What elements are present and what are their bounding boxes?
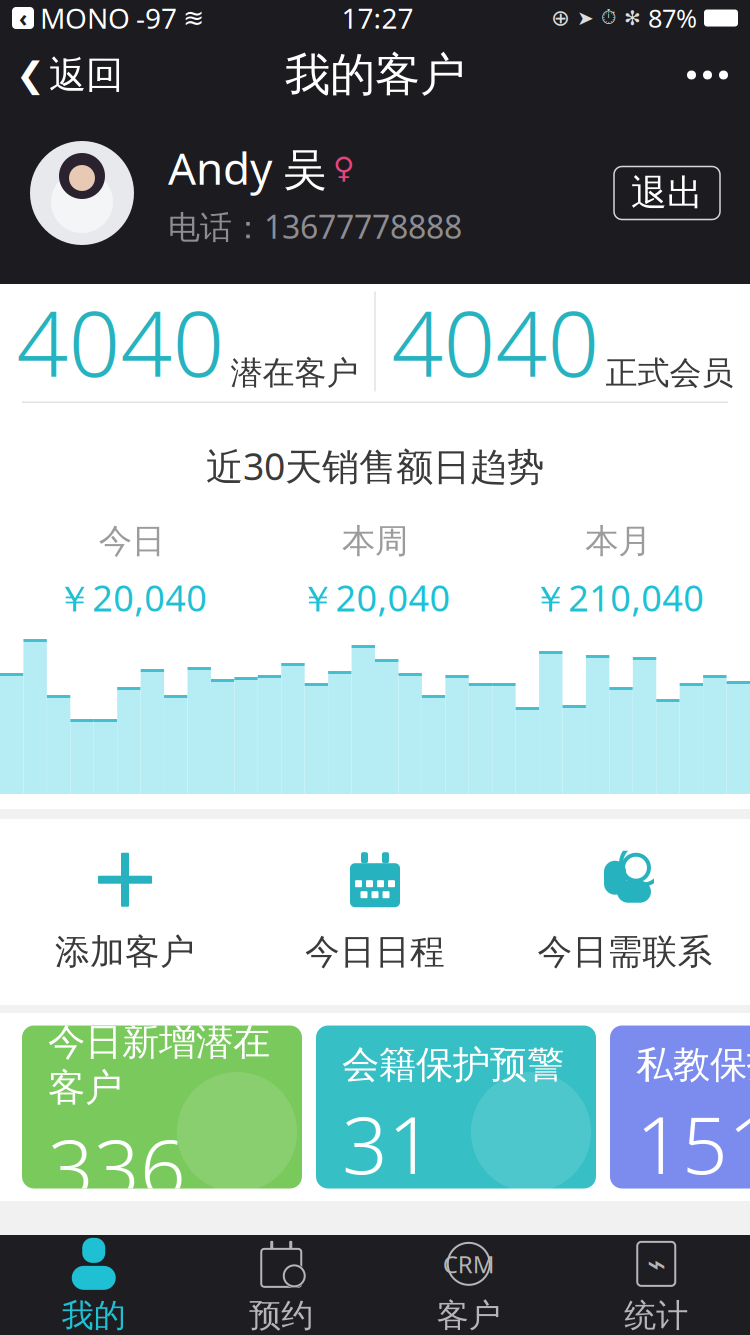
staticText: Andy 吴: [168, 138, 327, 197]
staticText: ➤: [577, 7, 594, 29]
staticText: 客户: [437, 1296, 501, 1335]
button[interactable]: 私教保护预警: [610, 1025, 750, 1188]
staticText: ✻: [624, 7, 641, 29]
staticText: 潜在客户: [230, 353, 358, 393]
staticText: 31: [342, 1090, 434, 1196]
button[interactable]: 会籍保护预警: [316, 1025, 596, 1188]
staticText: ⏱: [601, 8, 617, 28]
staticText: 本周: [342, 521, 408, 561]
staticText: ￥20,040: [56, 573, 207, 621]
staticText: 正式会员: [605, 353, 733, 393]
button[interactable]: ⌁: [562, 1235, 750, 1335]
staticText: 近30天销售额日趋势: [206, 441, 544, 491]
button[interactable]: 今日新增潜在客户: [22, 1025, 302, 1188]
staticText: 151: [636, 1090, 750, 1196]
staticText: 我的: [62, 1296, 126, 1335]
staticText: 电话：13677778888: [168, 205, 462, 248]
staticText: ￥210,040: [532, 573, 704, 621]
button[interactable]: 我的: [0, 1235, 187, 1335]
staticText: 今日新增潜在客户: [48, 1019, 270, 1111]
button[interactable]: 添加客户: [0, 819, 250, 1005]
staticText: 今日需联系: [537, 931, 712, 973]
button[interactable]: 今日需联系: [500, 819, 750, 1005]
staticText: 退出: [631, 171, 703, 215]
staticText: -97: [136, 0, 177, 37]
staticText: 添加客户: [55, 931, 195, 973]
button[interactable]: 更多: [665, 39, 750, 111]
staticText: 4040: [391, 281, 599, 402]
button[interactable]: ❮: [0, 39, 139, 111]
staticText: ⌁: [647, 1246, 666, 1282]
button[interactable]: 今日日程: [250, 819, 500, 1005]
staticText: 336: [48, 1113, 186, 1219]
staticText: 预约: [249, 1296, 313, 1335]
staticText: 87%: [648, 1, 697, 35]
staticText: ≋: [183, 4, 204, 32]
staticText: ❮: [16, 55, 45, 95]
button[interactable]: CRM: [375, 1235, 562, 1335]
staticText: 我的客户: [285, 47, 465, 103]
staticText: ‹: [19, 3, 27, 33]
button[interactable]: 预约: [187, 1235, 375, 1335]
staticText: ♀: [333, 151, 354, 184]
staticText: 17:27: [341, 0, 413, 37]
staticText: 私教保护预警: [636, 1042, 750, 1088]
staticText: 今日: [99, 521, 165, 561]
staticText: CRM: [443, 1248, 495, 1280]
staticText: 今日日程: [305, 931, 445, 973]
staticText: 返回: [49, 52, 123, 98]
button[interactable]: 退出: [614, 166, 720, 219]
staticText: 4040: [16, 281, 224, 402]
staticText: ⊕: [551, 5, 570, 31]
staticText: 统计: [624, 1296, 688, 1335]
staticText: MONO: [40, 0, 130, 37]
staticText: ￥20,040: [299, 573, 450, 621]
staticText: 本月: [585, 521, 651, 561]
staticText: 会籍保护预警: [342, 1042, 564, 1088]
